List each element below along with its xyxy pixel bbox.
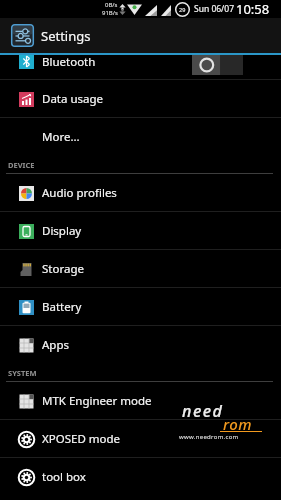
button[interactable]: Display — [0, 212, 281, 250]
staticText: 91B/s — [102, 9, 118, 17]
staticText: Bluetooth — [42, 55, 96, 70]
staticText: Settings — [41, 27, 91, 45]
staticText: DEVICE — [8, 160, 35, 170]
staticText: More… — [42, 129, 80, 145]
staticText: SYSTEM — [8, 368, 37, 378]
staticText: www.needrom.com — [179, 433, 239, 441]
staticText: Audio profiles — [42, 185, 117, 201]
button[interactable]: Data usage — [0, 80, 281, 118]
button[interactable]: MTK Engineer mode — [0, 382, 281, 420]
button[interactable]: Storage — [0, 250, 281, 288]
staticText: Apps — [42, 337, 70, 353]
staticText: Sun 06/07 — [194, 3, 234, 15]
staticText: MTK Engineer mode — [42, 393, 152, 409]
button[interactable]: XPOSED mode — [0, 420, 281, 458]
button[interactable]: Audio profiles — [0, 174, 281, 212]
staticText: XPOSED mode — [42, 431, 121, 447]
staticText: Data usage — [42, 91, 104, 107]
staticText: 29 — [179, 6, 186, 13]
button[interactable]: Battery — [0, 288, 281, 326]
staticText: need — [182, 400, 224, 422]
button[interactable]: tool box — [0, 458, 281, 496]
button[interactable]: Settings — [0, 18, 281, 53]
button[interactable]: Apps — [0, 326, 281, 364]
button[interactable]: Bluetooth — [0, 55, 281, 80]
staticText: tool box — [42, 469, 86, 485]
staticText: Display — [42, 223, 82, 239]
staticText: rom — [223, 414, 253, 434]
staticText: Battery — [42, 299, 82, 315]
staticText: 0B/s — [105, 1, 118, 9]
staticText: 10:58 — [236, 0, 270, 18]
button[interactable]: More… — [0, 118, 281, 156]
staticText: Storage — [42, 261, 84, 277]
